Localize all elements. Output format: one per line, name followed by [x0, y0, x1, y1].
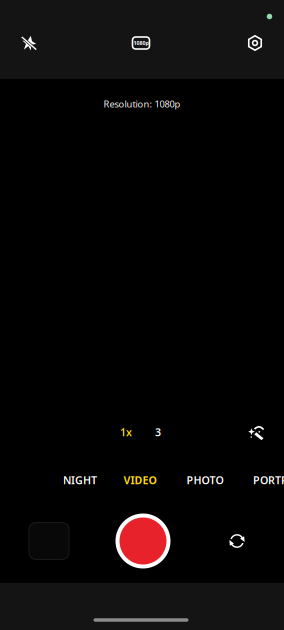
- button[interactable]: Auto enhance: [241, 419, 271, 445]
- button[interactable]: PHOTO: [176, 469, 234, 491]
- button[interactable]: NIGHT: [51, 469, 109, 491]
- button[interactable]: Photo library: [21, 514, 77, 568]
- button[interactable]: Switch camera: [211, 516, 263, 566]
- button[interactable]: Settings: [233, 23, 277, 63]
- staticText: Resolution: 1080p: [103, 98, 180, 110]
- button[interactable]: 3: [145, 421, 171, 443]
- button[interactable]: VIDEO: [111, 469, 169, 491]
- staticText: NIGHT: [63, 473, 97, 487]
- button[interactable]: PORTRAIT: [250, 469, 284, 491]
- staticText: PORTRAIT: [253, 473, 284, 487]
- staticText: PHOTO: [186, 473, 223, 487]
- button[interactable]: Video quality 1080p: [119, 23, 163, 63]
- button[interactable]: Record video: [113, 511, 173, 571]
- staticText: 1x: [120, 425, 132, 439]
- button[interactable]: 1x: [113, 421, 139, 443]
- staticText: 1080p: [133, 39, 148, 47]
- button[interactable]: Flash off: [7, 23, 51, 63]
- staticText: 3: [155, 425, 161, 439]
- staticText: VIDEO: [123, 473, 156, 487]
